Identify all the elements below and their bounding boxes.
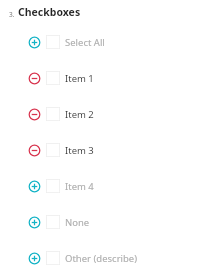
button[interactable]: Add option	[28, 36, 41, 49]
staticText: Item 2	[65, 108, 94, 121]
button[interactable]: Checkbox Item 2	[46, 107, 60, 121]
button[interactable]: Add option	[28, 216, 41, 229]
button[interactable]: Checkbox None	[46, 215, 60, 229]
button[interactable]: Remove option	[28, 144, 41, 157]
staticText: Other (describe)	[65, 252, 138, 265]
button[interactable]: Add option	[0, 249, 199, 267]
staticText: None	[65, 216, 90, 229]
button[interactable]: Remove option	[0, 69, 199, 87]
button[interactable]: Checkbox Item 4	[46, 179, 60, 193]
staticText: Item 1	[65, 72, 94, 85]
staticText: Item 3	[65, 144, 94, 157]
button[interactable]: Add option	[0, 33, 199, 51]
button[interactable]: Checkbox Item 1	[46, 71, 60, 85]
button[interactable]: Add option	[0, 213, 199, 231]
button[interactable]: Remove option	[28, 72, 41, 85]
button[interactable]: Remove option	[0, 141, 199, 159]
staticText: Item 4	[65, 180, 94, 193]
staticText: 3.	[9, 10, 15, 19]
staticText: Checkboxes	[18, 5, 81, 19]
button[interactable]: Remove option	[0, 105, 199, 123]
button[interactable]: Checkbox Select All	[46, 35, 60, 49]
button[interactable]: Checkbox Item 3	[46, 143, 60, 157]
button[interactable]: Add option	[0, 177, 199, 195]
button[interactable]: Checkbox Other (describe)	[46, 251, 60, 265]
button[interactable]: Add option	[28, 180, 41, 193]
staticText: Select All	[65, 36, 105, 49]
button[interactable]: Remove option	[28, 108, 41, 121]
button[interactable]: Add option	[28, 252, 41, 265]
